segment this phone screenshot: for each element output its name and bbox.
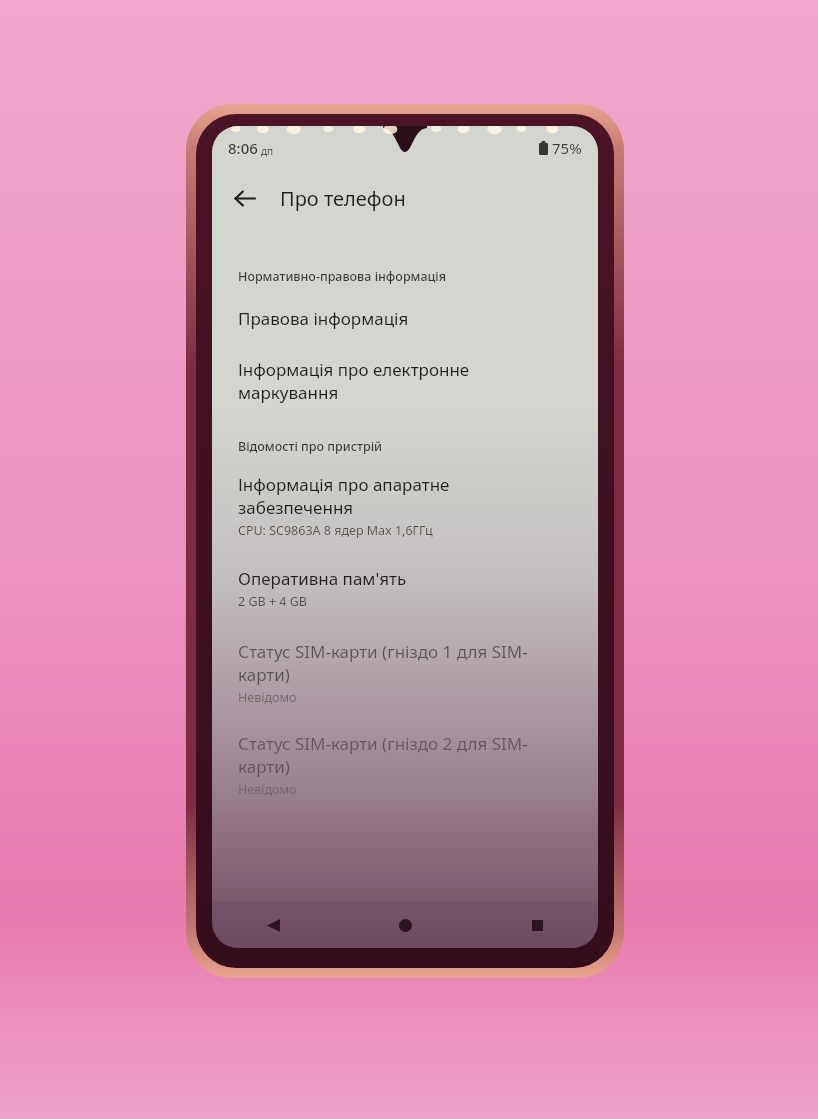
staticText: Інформація про апаратне забезпечення bbox=[238, 473, 558, 519]
button[interactable]: Правова інформація bbox=[212, 307, 598, 330]
button[interactable]: Оперативна пам'ять bbox=[212, 567, 598, 610]
staticText: Невідомо bbox=[238, 781, 297, 798]
button[interactable]: Інформація про електронне маркування bbox=[212, 358, 598, 404]
button[interactable]: Back bbox=[222, 176, 266, 220]
button[interactable]: Home bbox=[384, 904, 426, 946]
staticText: 8:06 bbox=[228, 138, 258, 158]
staticText: 75% bbox=[552, 138, 582, 158]
staticText: CPU: SC9863A 8 ядер Max 1,6ГГц bbox=[238, 522, 433, 539]
button[interactable]: Статус SIM-карти (гніздо 1 для SIM-карти… bbox=[212, 640, 598, 706]
staticText: Правова інформація bbox=[238, 307, 409, 330]
button[interactable]: Статус SIM-карти (гніздо 2 для SIM-карти… bbox=[212, 732, 598, 798]
button[interactable]: Back bbox=[252, 904, 294, 946]
staticText: Про телефон bbox=[280, 185, 406, 212]
staticText: Статус SIM-карти (гніздо 1 для SIM-карти… bbox=[238, 640, 558, 686]
staticText: Невідомо bbox=[238, 689, 297, 706]
staticText: Нормативно-правова інформація bbox=[238, 268, 447, 285]
staticText: Інформація про електронне маркування bbox=[238, 358, 558, 404]
staticText: 2 GB + 4 GB bbox=[238, 593, 307, 610]
staticText: Статус SIM-карти (гніздо 2 для SIM-карти… bbox=[238, 732, 558, 778]
button[interactable]: Інформація про апаратне забезпечення bbox=[212, 473, 598, 539]
staticText: Відомості про пристрій bbox=[238, 438, 383, 455]
button[interactable]: Recent apps bbox=[516, 904, 558, 946]
staticText: дп bbox=[261, 144, 274, 158]
staticText: Оперативна пам'ять bbox=[238, 567, 407, 590]
